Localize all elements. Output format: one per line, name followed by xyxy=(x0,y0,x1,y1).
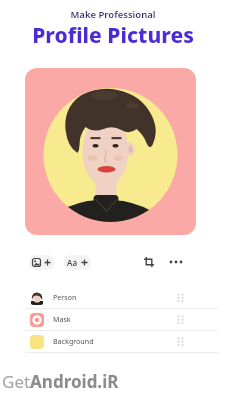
staticText: Aa xyxy=(67,257,78,268)
staticText: Make Professional xyxy=(0,8,226,21)
button[interactable] xyxy=(142,255,156,269)
button[interactable]: Person xyxy=(0,287,226,308)
staticText: Background xyxy=(53,337,94,347)
staticText: Person xyxy=(53,293,77,303)
button[interactable]: Mask xyxy=(0,309,226,330)
staticText: GetAndroid.iR xyxy=(2,370,119,393)
button[interactable] xyxy=(29,255,54,270)
staticText: Profile Pictures xyxy=(0,21,226,50)
button[interactable]: Aa xyxy=(64,255,91,270)
button[interactable]: Background xyxy=(0,331,226,352)
staticText: Mask xyxy=(53,315,71,325)
button[interactable] xyxy=(167,255,185,269)
